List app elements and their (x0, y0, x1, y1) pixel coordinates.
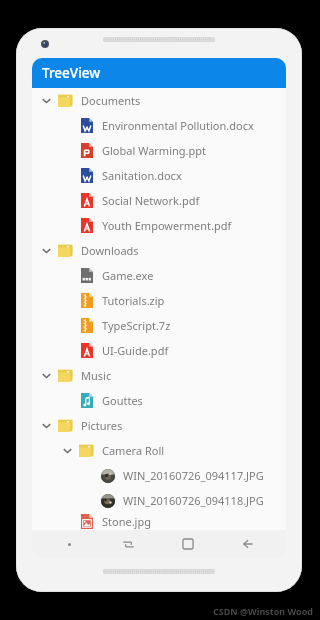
button[interactable]: Collapse Pictures (32, 413, 286, 438)
other: Collapse Pictures (36, 413, 57, 438)
button[interactable]: Home (158, 530, 218, 558)
staticText: Global Warming.ppt (102, 143, 206, 158)
staticText: Documents (81, 93, 141, 108)
button[interactable]: Collapse Camera Roll (32, 438, 286, 463)
button[interactable]: Sanitation.docx (32, 163, 286, 188)
staticText: Camera Roll (102, 443, 165, 458)
button[interactable]: Tutorials.zip (32, 288, 286, 313)
staticText: Stone.jpg (102, 514, 151, 529)
button[interactable]: Social Network.pdf (32, 188, 286, 213)
button[interactable]: Global Warming.ppt (32, 138, 286, 163)
staticText: Downloads (81, 243, 139, 258)
button[interactable]: Gouttes (32, 388, 286, 413)
other: Collapse Downloads (36, 238, 57, 263)
staticText: Pictures (81, 418, 123, 433)
button[interactable]: Collapse Documents (32, 88, 286, 113)
button[interactable]: Youth Empowerment.pdf (32, 213, 286, 238)
staticText: Gouttes (102, 393, 143, 408)
staticText: Youth Empowerment.pdf (102, 218, 232, 233)
button[interactable]: UI-Guide.pdf (32, 338, 286, 363)
staticText: TreeView (42, 64, 101, 82)
button[interactable]: Game.exe (32, 263, 286, 288)
button[interactable]: Stone.jpg (32, 513, 286, 530)
staticText: Music (81, 368, 112, 383)
button[interactable]: Collapse Downloads (32, 238, 286, 263)
staticText: WIN_20160726_094117.JPG (123, 468, 264, 483)
button[interactable]: Back (218, 530, 278, 558)
button[interactable]: Switch apps (99, 530, 158, 558)
staticText: Game.exe (102, 268, 154, 283)
button[interactable]: WIN_20160726_094117.JPG (32, 463, 286, 488)
staticText: Environmental Pollution.docx (102, 118, 254, 133)
button[interactable]: TypeScript.7z (32, 313, 286, 338)
staticText: TypeScript.7z (102, 318, 171, 333)
other: Collapse Documents (36, 88, 57, 113)
staticText: Tutorials.zip (102, 293, 165, 308)
button[interactable]: WIN_20160726_094118.JPG (32, 488, 286, 513)
button[interactable]: Environmental Pollution.docx (32, 113, 286, 138)
button[interactable]: TreeView (32, 58, 286, 88)
button[interactable]: Menu (40, 530, 99, 558)
staticText: Sanitation.docx (102, 168, 182, 183)
other: Collapse Camera Roll (57, 438, 78, 463)
staticText: WIN_20160726_094118.JPG (123, 493, 264, 508)
button[interactable]: Collapse Music (32, 363, 286, 388)
staticText: CSDN @Winston Wood (213, 605, 314, 617)
staticText: Social Network.pdf (102, 193, 200, 208)
staticText: UI-Guide.pdf (102, 343, 169, 358)
other: Collapse Music (36, 363, 57, 388)
